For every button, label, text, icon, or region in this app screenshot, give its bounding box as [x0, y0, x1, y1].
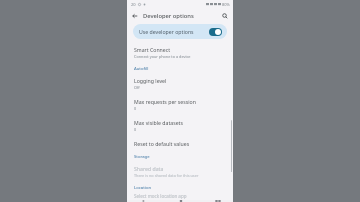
staticText: Connect your phone to a device	[134, 54, 191, 59]
button[interactable]: Reset to default values	[127, 136, 233, 151]
staticText: 0	[134, 106, 137, 111]
button[interactable]: Recent apps	[212, 200, 223, 202]
button[interactable]: Home	[175, 200, 186, 202]
staticText: Location	[134, 185, 152, 191]
staticText: Select mock location app	[134, 193, 187, 199]
button[interactable]: Shared data	[127, 161, 233, 182]
staticText: Developer options	[143, 12, 194, 20]
staticText: Storage	[134, 154, 150, 160]
staticText: Logging level	[134, 77, 167, 84]
button[interactable]: Max visible datasets	[127, 115, 233, 136]
button[interactable]: Back	[137, 200, 148, 202]
staticText: Max visible datasets	[134, 119, 183, 126]
staticText: There is no shared data for this user	[134, 173, 199, 178]
staticText: Smart Connect	[134, 46, 171, 53]
staticText: Use developer options	[139, 28, 194, 35]
staticText: 20	[131, 2, 136, 7]
staticText: 0	[134, 127, 137, 132]
staticText: Max requests per session	[134, 98, 196, 105]
button[interactable]: Smart Connect	[127, 42, 233, 63]
button[interactable]: Search	[220, 11, 230, 21]
button[interactable]: Use developer options	[133, 24, 227, 39]
button[interactable]: Back	[130, 11, 140, 21]
staticText: Autofill	[134, 66, 149, 72]
staticText: 80%	[222, 2, 230, 7]
staticText: Off	[134, 85, 140, 90]
staticText: Shared data	[134, 165, 164, 172]
button[interactable]: Max requests per session	[127, 94, 233, 115]
button[interactable]: Logging level	[127, 73, 233, 94]
staticText: Reset to default values	[134, 140, 190, 147]
